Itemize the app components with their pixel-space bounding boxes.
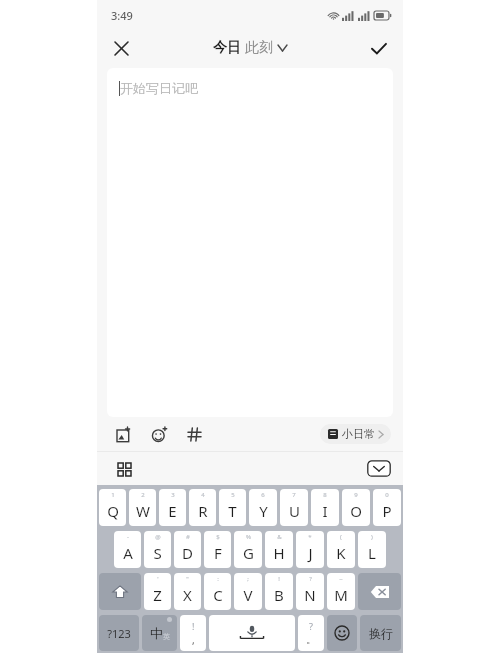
button[interactable]: ?123 [99,615,139,651]
button[interactable]: Add emoji [146,421,172,447]
button[interactable]: 7 [280,489,308,526]
staticText: # [186,533,190,541]
button[interactable]: Emoji [327,615,357,651]
button[interactable]: Key [99,573,141,610]
staticText: 英 [163,632,170,641]
button[interactable]: Hide keyboard [367,460,391,477]
button[interactable]: $ [204,531,231,568]
button[interactable]: 0 [373,489,401,526]
button[interactable]: ) [358,531,386,568]
staticText: 3:49 [111,8,133,23]
button[interactable]: ? [298,615,324,651]
staticText: 9 [354,491,358,499]
staticText: Y [259,501,268,521]
staticText: ? [309,620,313,632]
button[interactable]: Close [105,32,137,64]
button[interactable]: 换行 [360,615,401,651]
staticText: A [123,543,133,563]
staticText: G [243,543,254,563]
button[interactable]: 开始写日记吧 [107,68,393,417]
button[interactable]: ! [180,615,206,651]
staticText: 今日 [213,39,241,57]
staticText: ; [247,575,249,583]
staticText: 此刻 [245,39,273,57]
staticText: & [277,533,282,541]
staticText: ! [278,575,280,583]
button[interactable]: 今日 [213,39,287,57]
staticText: ) [371,533,373,541]
staticText: ' [157,575,159,583]
button[interactable]: ! [265,573,293,610]
button[interactable]: ( [327,531,355,568]
staticText: S [153,543,162,563]
staticText: % [246,533,251,541]
button[interactable]: 6 [249,489,277,526]
staticText: T [228,501,237,521]
button[interactable]: 4 [189,489,216,526]
button[interactable]: 2 [129,489,156,526]
button[interactable]: & [265,531,293,568]
staticText: ? [309,575,312,583]
button[interactable]: 8 [311,489,339,526]
button[interactable]: " [174,573,201,610]
button[interactable]: ' [144,573,171,610]
staticText: D [182,543,193,563]
staticText: B [274,585,284,605]
staticText: K [336,543,346,563]
staticText: F [214,543,222,563]
staticText: I [322,501,328,521]
staticText: 4 [201,491,205,499]
button[interactable]: Add tag [181,421,207,447]
staticText: 小日常 [342,427,375,441]
staticText: " [186,575,189,583]
button[interactable]: 9 [342,489,370,526]
staticText: 5 [231,491,235,499]
staticText: * [308,533,312,541]
button[interactable]: 1 [99,489,126,526]
button[interactable]: ; [234,573,262,610]
button[interactable]: 5 [219,489,246,526]
button[interactable]: Add image [111,421,137,447]
staticText: 2 [141,491,145,499]
staticText: M [334,585,348,605]
staticText: 。 [306,633,316,646]
button[interactable]: 3 [159,489,186,526]
staticText: 中 [150,625,163,641]
staticText: @ [155,533,161,541]
staticText: $ [216,533,220,541]
staticText: R [198,501,208,521]
button[interactable]: % [234,531,262,568]
button[interactable]: Space [209,615,295,651]
staticText: 0 [385,491,389,499]
staticText: X [183,585,192,605]
staticText: 3 [171,491,175,499]
button[interactable]: * [296,531,324,568]
staticText: 7 [292,491,296,499]
staticText: C [213,585,223,605]
staticText: Q [107,501,119,521]
button[interactable]: Key [358,573,401,610]
staticText: H [273,543,285,563]
staticText: U [289,501,300,521]
button[interactable]: : [204,573,231,610]
button[interactable]: Apps [111,456,137,482]
button[interactable]: 中 [142,615,177,651]
staticText: 1 [111,491,115,499]
button[interactable]: Save [363,32,395,64]
button[interactable]: ~ [327,573,355,610]
button[interactable]: @ [144,531,171,568]
button[interactable]: # [174,531,201,568]
staticText: - [127,533,129,541]
staticText: L [368,543,376,563]
staticText: J [308,543,313,563]
button[interactable]: 小日常 [320,424,391,444]
staticText: ?123 [107,626,131,641]
staticText: , [192,633,195,647]
button[interactable]: ? [296,573,324,610]
staticText: : [217,575,219,583]
button[interactable]: - [114,531,141,568]
staticText: 6 [261,491,265,499]
staticText: ! [192,620,195,632]
staticText: ~ [339,575,343,583]
staticText: ( [340,533,342,541]
